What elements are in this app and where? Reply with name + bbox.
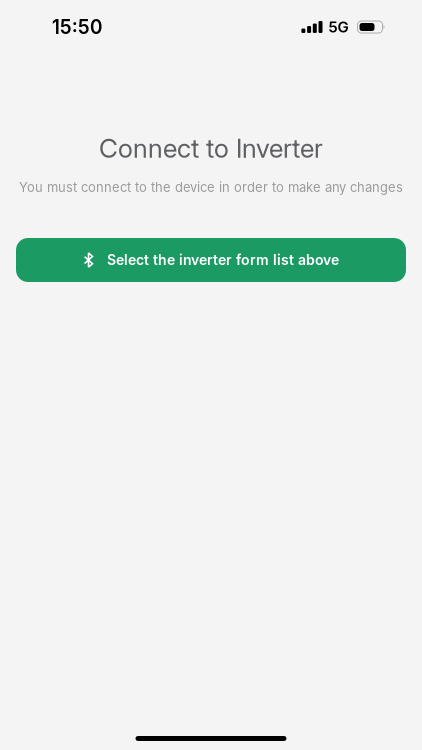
staticText: You must connect to the device in order … [19,180,403,195]
staticText: 5G [328,18,348,36]
staticText: Select the inverter form list above [107,252,339,268]
staticText: Connect to Inverter [99,133,323,164]
button[interactable]: Select the inverter form list above [16,238,406,282]
staticText: 15:50 [52,16,102,38]
